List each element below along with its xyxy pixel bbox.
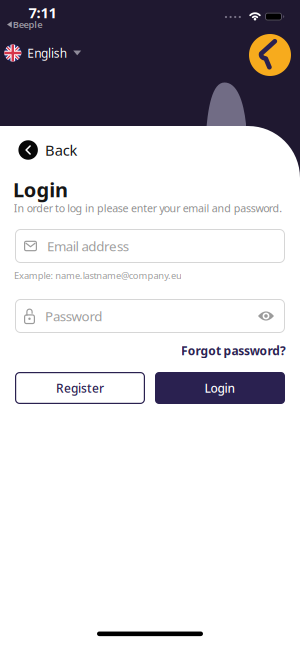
staticText: 7:11 [28, 3, 56, 22]
button[interactable]: Password [15, 299, 285, 333]
button[interactable]: Email address [15, 229, 285, 263]
staticText: Forgot password? [181, 342, 286, 358]
staticText: Email address [47, 237, 129, 255]
button[interactable]: Forgot password? [181, 342, 286, 358]
button[interactable]: English [4, 40, 82, 66]
staticText: Example: name.lastname@company.eu [14, 269, 182, 282]
staticText: Password [45, 307, 102, 325]
staticText: Register [56, 380, 104, 396]
staticText: English [27, 45, 67, 61]
staticText: Login [13, 176, 68, 203]
button[interactable]: Back [18, 140, 78, 160]
button[interactable]: Login [155, 372, 285, 404]
button[interactable]: Register [15, 372, 145, 404]
staticText: In order to log in please enter your ema… [14, 201, 282, 215]
staticText: Beeple [13, 18, 42, 31]
staticText: Login [204, 380, 235, 396]
staticText: Back [45, 140, 78, 160]
